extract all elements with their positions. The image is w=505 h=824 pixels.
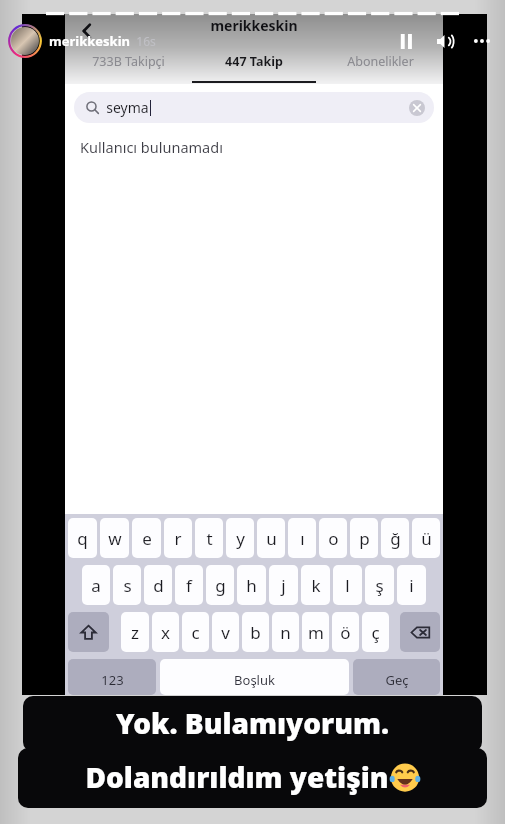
button[interactable]: e xyxy=(132,518,161,558)
staticText: r xyxy=(174,527,182,550)
staticText: Geç xyxy=(385,671,409,689)
staticText: q xyxy=(77,527,88,550)
button[interactable]: p xyxy=(350,518,378,558)
staticText: i xyxy=(409,574,414,597)
button[interactable]: Profile xyxy=(8,24,42,58)
staticText: 16s xyxy=(136,33,156,49)
staticText: s xyxy=(123,574,132,597)
button[interactable]: n xyxy=(272,612,299,652)
button[interactable]: f xyxy=(175,565,203,605)
button[interactable]: Clear search xyxy=(409,100,425,116)
staticText: f xyxy=(186,574,192,597)
button[interactable]: More options xyxy=(469,28,495,54)
button[interactable]: r xyxy=(164,518,192,558)
staticText: d xyxy=(153,574,164,597)
staticText: ı xyxy=(300,527,305,550)
button[interactable]: ı xyxy=(288,518,316,558)
staticText: t xyxy=(206,527,213,550)
staticText: merikkeskin xyxy=(210,16,298,35)
button[interactable]: Yok. Bulamıyorum. xyxy=(23,696,482,752)
button[interactable]: ö xyxy=(332,612,359,652)
staticText: seyma xyxy=(106,98,149,117)
staticText: w xyxy=(108,527,122,550)
button[interactable]: c xyxy=(182,612,209,652)
button[interactable]: g xyxy=(206,565,234,605)
button[interactable]: u xyxy=(257,518,285,558)
button[interactable]: l xyxy=(333,565,362,605)
staticText: l xyxy=(345,574,350,597)
staticText: j xyxy=(281,574,286,597)
button[interactable]: w xyxy=(100,518,129,558)
button[interactable]: s xyxy=(113,565,141,605)
button[interactable]: Geç xyxy=(353,659,440,695)
staticText: Abonelikler xyxy=(347,53,414,70)
staticText: p xyxy=(359,527,370,550)
button[interactable]: Abonelikler xyxy=(317,48,443,84)
button[interactable]: v xyxy=(212,612,239,652)
staticText: ç xyxy=(371,621,380,644)
button[interactable]: y xyxy=(226,518,254,558)
button[interactable]: q xyxy=(68,518,97,558)
button[interactable]: Mute xyxy=(431,28,457,54)
button[interactable]: o xyxy=(319,518,347,558)
button[interactable]: 447 Takip xyxy=(191,48,317,84)
staticText: 123 xyxy=(101,671,124,689)
button[interactable]: b xyxy=(242,612,269,652)
button[interactable]: Backspace xyxy=(400,612,440,652)
staticText: g xyxy=(215,574,226,597)
button[interactable]: t xyxy=(195,518,223,558)
staticText: k xyxy=(311,574,321,597)
staticText: e xyxy=(142,527,152,550)
button[interactable]: d xyxy=(144,565,172,605)
staticText: ü xyxy=(421,527,432,550)
button[interactable]: Back xyxy=(71,15,103,47)
staticText: ş xyxy=(375,574,384,597)
button[interactable]: Pause xyxy=(393,28,419,54)
staticText: v xyxy=(221,621,230,644)
button[interactable]: Shift xyxy=(68,612,109,652)
button[interactable]: ğ xyxy=(381,518,409,558)
staticText: ğ xyxy=(390,527,401,550)
button[interactable]: ç xyxy=(362,612,389,652)
button[interactable]: z xyxy=(121,612,149,652)
button[interactable]: 123 xyxy=(68,659,156,695)
staticText: c xyxy=(191,621,200,644)
staticText: x xyxy=(161,621,170,644)
button[interactable]: ü xyxy=(412,518,440,558)
button[interactable]: a xyxy=(82,565,110,605)
button[interactable]: j xyxy=(269,565,298,605)
button[interactable]: seyma xyxy=(74,92,434,123)
button[interactable]: 733B Takipçi xyxy=(65,48,191,84)
button[interactable]: k xyxy=(301,565,330,605)
staticText: a xyxy=(91,574,101,597)
staticText: 733B Takipçi xyxy=(92,53,165,70)
staticText: 447 Takip xyxy=(225,53,283,70)
staticText: u xyxy=(266,527,277,550)
button[interactable]: ş xyxy=(365,565,394,605)
button[interactable]: x xyxy=(152,612,179,652)
staticText: Dolandırıldım yetişin xyxy=(85,758,389,796)
staticText: b xyxy=(250,621,261,644)
staticText: o xyxy=(328,527,339,550)
button[interactable]: i xyxy=(397,565,426,605)
staticText: merikkeskin xyxy=(49,32,130,50)
button[interactable]: Dolandırıldım yetişin xyxy=(18,748,487,808)
staticText: Boşluk xyxy=(234,671,275,689)
button[interactable]: h xyxy=(237,565,266,605)
button[interactable]: m xyxy=(302,612,329,652)
staticText: Yok. Bulamıyorum. xyxy=(116,704,389,742)
staticText: ö xyxy=(340,621,351,644)
staticText: y xyxy=(236,527,245,550)
staticText: m xyxy=(308,621,324,644)
staticText: Kullanıcı bulunamadı xyxy=(80,137,223,157)
staticText: n xyxy=(280,621,291,644)
staticText: z xyxy=(131,621,139,644)
button[interactable]: Boşluk xyxy=(160,659,349,695)
staticText: h xyxy=(246,574,257,597)
